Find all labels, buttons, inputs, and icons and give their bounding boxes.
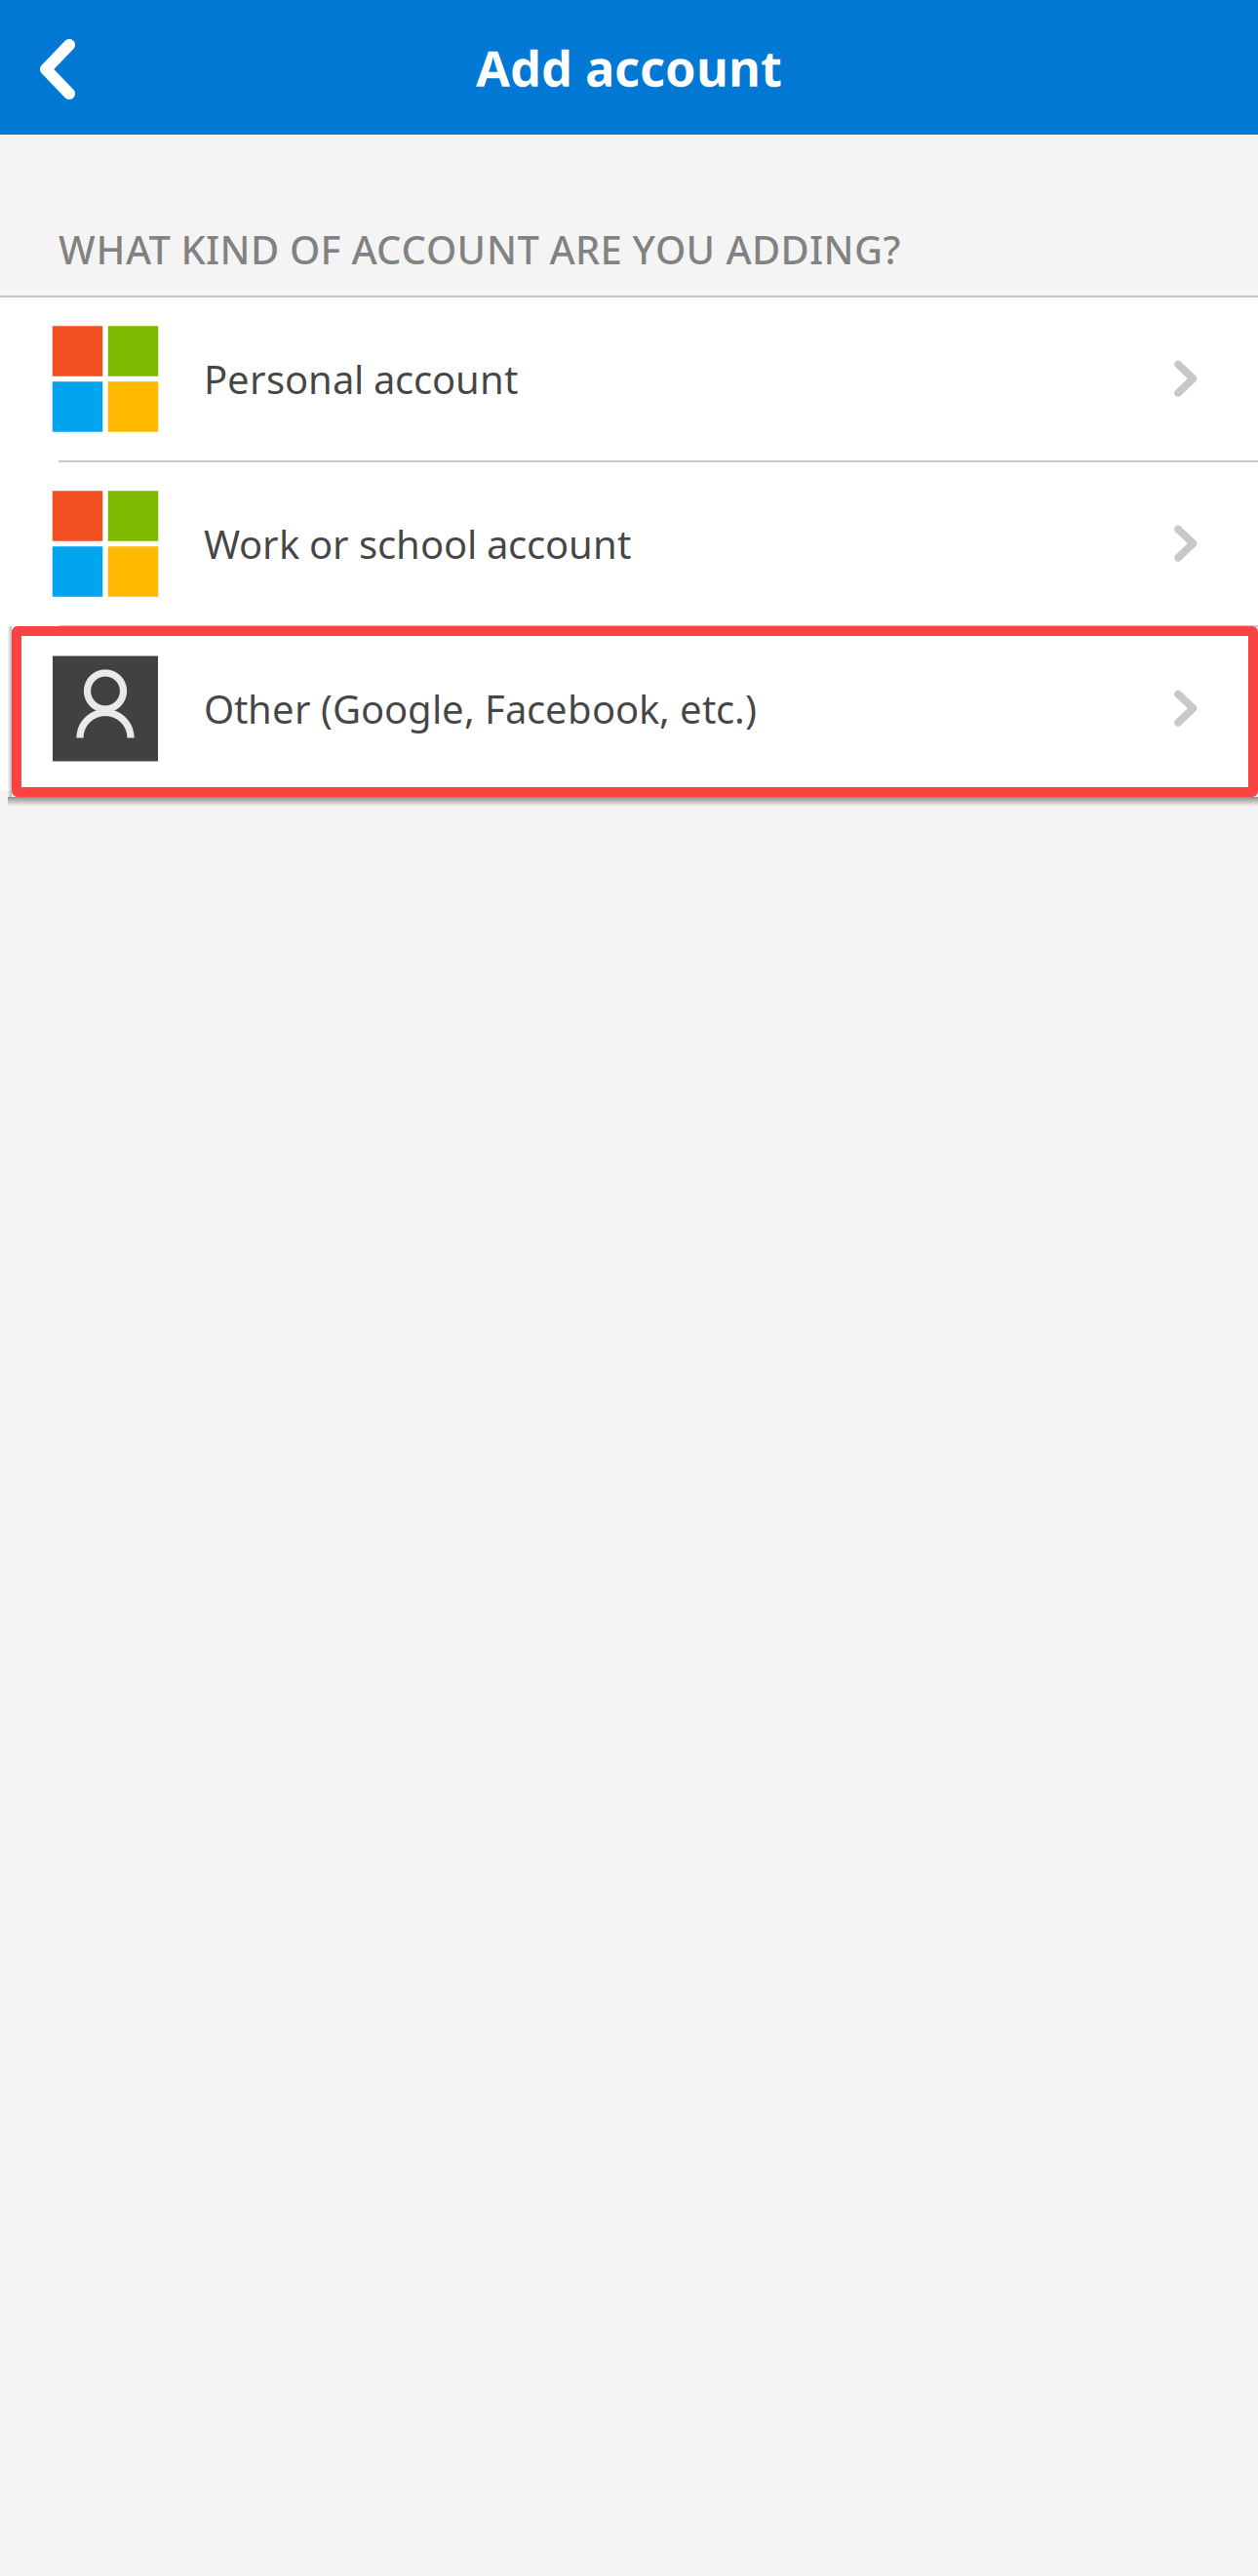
button[interactable]: Work or school account xyxy=(0,461,1258,626)
staticText: WHAT KIND OF ACCOUNT ARE YOU ADDING? xyxy=(59,223,901,275)
staticText: Add account xyxy=(476,35,782,100)
button[interactable]: Other (Google, Facebook, etc.) xyxy=(0,626,1258,791)
staticText: Other (Google, Facebook, etc.) xyxy=(204,683,757,734)
button[interactable]: Personal account xyxy=(0,297,1258,461)
staticText: Personal account xyxy=(204,353,518,405)
button[interactable]: Back xyxy=(0,6,100,129)
staticText: Work or school account xyxy=(204,518,631,570)
